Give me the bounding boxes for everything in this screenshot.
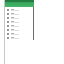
button[interactable] xyxy=(5,32,34,36)
button[interactable] xyxy=(5,12,34,16)
button[interactable] xyxy=(5,2,34,7)
button[interactable] xyxy=(5,8,34,12)
button[interactable] xyxy=(5,36,34,40)
button[interactable] xyxy=(5,20,34,24)
button[interactable] xyxy=(5,24,34,28)
button[interactable] xyxy=(5,28,34,32)
button[interactable] xyxy=(5,16,34,20)
